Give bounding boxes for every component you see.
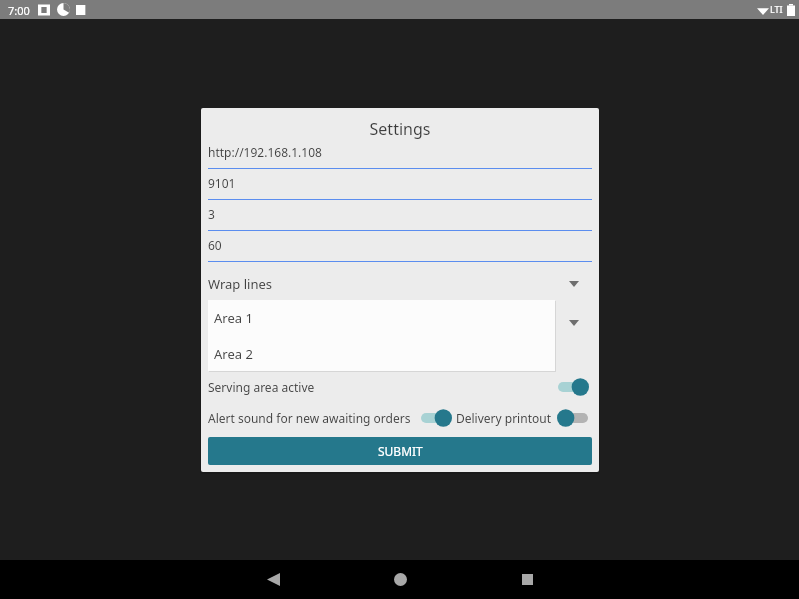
button[interactable]: SUBMIT — [208, 437, 592, 465]
button[interactable]: 3 — [208, 204, 592, 231]
button[interactable]: 9101 — [208, 173, 592, 200]
button[interactable]: 60 — [208, 235, 592, 262]
staticText: Alert sound for new awaiting orders — [208, 410, 411, 426]
staticText: Serving area active — [208, 379, 315, 395]
staticText: Area 2 — [214, 345, 253, 363]
button[interactable]: Alert sound for new awaiting orders — [208, 407, 411, 429]
button[interactable]: Back — [253, 560, 293, 599]
button[interactable]: Delivery printout — [456, 407, 551, 429]
button[interactable]: http://192.168.1.108 — [208, 142, 592, 169]
button[interactable]: Recents — [507, 560, 547, 599]
staticText: Delivery printout — [456, 410, 551, 426]
button[interactable]: Dropdown — [208, 268, 592, 300]
staticText: 3 — [208, 206, 215, 222]
button[interactable]: Serving area active — [208, 376, 315, 398]
staticText: http://192.168.1.108 — [208, 144, 322, 160]
staticText: Area 1 — [214, 309, 253, 327]
button[interactable]: Area 2 — [208, 337, 555, 371]
staticText: Wrap lines — [208, 275, 273, 293]
button[interactable]: Kitchen area active — [208, 344, 315, 366]
staticText: 7:00 — [8, 3, 30, 18]
staticText: Kitchen area active — [208, 347, 315, 363]
button[interactable]: Dropdown — [208, 307, 592, 339]
staticText: 60 — [208, 237, 222, 253]
staticText: Settings — [201, 118, 599, 140]
staticText: SUBMIT — [378, 443, 423, 459]
staticText: LTI — [770, 3, 783, 15]
staticText: 9101 — [208, 175, 236, 191]
button[interactable]: Home — [380, 560, 420, 599]
button[interactable]: Area 1 — [208, 300, 555, 336]
